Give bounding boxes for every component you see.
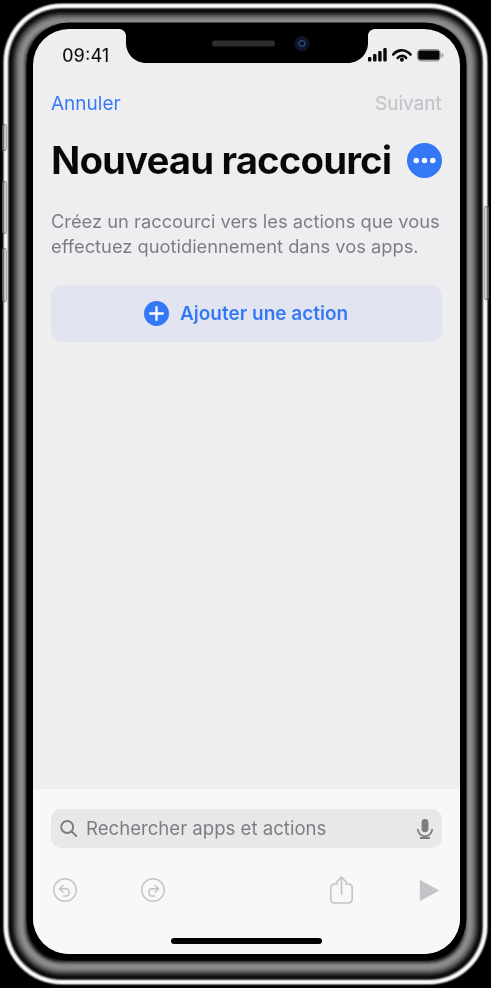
staticText: 09:41: [62, 45, 110, 67]
button[interactable]: Undo: [46, 871, 84, 909]
button[interactable]: Redo: [134, 871, 172, 909]
button[interactable]: Rechercher apps et actions: [51, 809, 442, 848]
staticText: Créez un raccourci vers les actions que …: [51, 210, 445, 258]
staticText: Nouveau raccourci: [51, 137, 392, 184]
staticText: Suivant: [375, 92, 442, 115]
staticText: Rechercher apps et actions: [86, 817, 327, 840]
staticText: Annuler: [51, 92, 121, 115]
button[interactable]: Annuler: [51, 92, 121, 115]
button[interactable]: Suivant: [375, 92, 442, 115]
button[interactable]: Share: [322, 871, 360, 909]
button[interactable]: More options: [407, 143, 442, 178]
button[interactable]: Ajouter une action: [51, 285, 442, 342]
button[interactable]: Play: [410, 871, 448, 909]
staticText: Ajouter une action: [180, 302, 349, 325]
